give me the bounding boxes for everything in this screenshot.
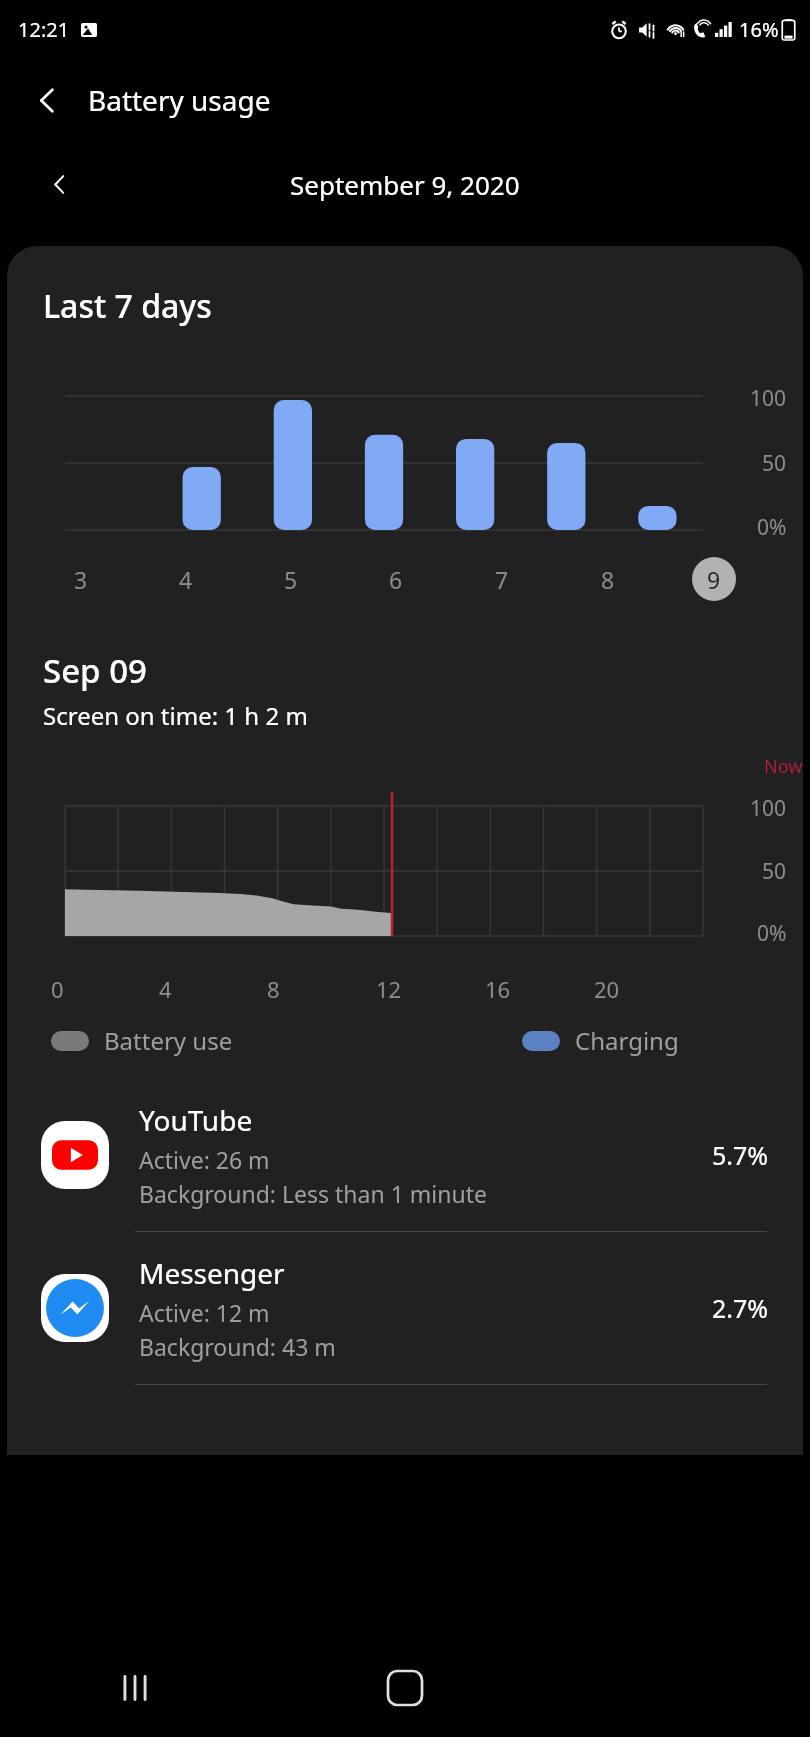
staticText: Battery usage bbox=[88, 81, 271, 119]
staticText: 6 bbox=[389, 564, 403, 595]
staticText: 9 bbox=[707, 564, 721, 595]
staticText: 0% bbox=[757, 513, 787, 542]
staticText: 2.7% bbox=[712, 1291, 769, 1325]
button[interactable]: 9 bbox=[692, 557, 736, 601]
button[interactable]: Recents bbox=[0, 1639, 270, 1737]
staticText: 0 bbox=[51, 974, 64, 1004]
button[interactable]: Charging bbox=[522, 1024, 679, 1057]
staticText: Screen on time: 1 h 2 m bbox=[43, 699, 308, 732]
staticText: 5.7% bbox=[712, 1138, 769, 1172]
button[interactable]: YouTube bbox=[7, 1079, 803, 1231]
staticText: 4 bbox=[159, 974, 172, 1004]
button[interactable]: Previous day bbox=[34, 159, 84, 209]
staticText: 100 bbox=[750, 384, 787, 413]
staticText: 12:21 bbox=[18, 16, 70, 43]
staticText: Active: 12 m bbox=[139, 1297, 270, 1328]
staticText: Background: Less than 1 minute bbox=[139, 1178, 487, 1209]
staticText: Charging bbox=[575, 1024, 679, 1057]
staticText: 0% bbox=[757, 919, 787, 948]
button[interactable]: Back bbox=[18, 71, 76, 129]
staticText: 8 bbox=[601, 564, 615, 595]
staticText: 20 bbox=[594, 974, 620, 1004]
staticText: 12 bbox=[376, 974, 402, 1004]
staticText: Background: 43 m bbox=[139, 1331, 336, 1362]
button[interactable]: Messenger bbox=[7, 1232, 803, 1384]
staticText: 7 bbox=[495, 564, 509, 595]
staticText: 3 bbox=[74, 564, 88, 595]
staticText: 16% bbox=[739, 16, 779, 43]
staticText: Active: 26 m bbox=[139, 1144, 270, 1175]
staticText: 100 bbox=[750, 794, 787, 823]
staticText: 50 bbox=[762, 857, 787, 886]
staticText: September 9, 2020 bbox=[290, 167, 520, 202]
staticText: Battery use bbox=[104, 1024, 233, 1057]
staticText: 8 bbox=[267, 974, 280, 1004]
staticText: Messenger bbox=[139, 1254, 285, 1292]
staticText: 4 bbox=[179, 564, 193, 595]
button[interactable]: Home bbox=[270, 1639, 540, 1737]
staticText: 50 bbox=[762, 449, 787, 478]
staticText: 16 bbox=[485, 974, 511, 1004]
staticText: Last 7 days bbox=[43, 284, 212, 328]
button[interactable]: Battery use bbox=[51, 1024, 233, 1057]
staticText: Now bbox=[764, 754, 803, 779]
staticText: Sep 09 bbox=[43, 648, 147, 693]
staticText: 5 bbox=[284, 564, 298, 595]
staticText: YouTube bbox=[139, 1101, 253, 1139]
